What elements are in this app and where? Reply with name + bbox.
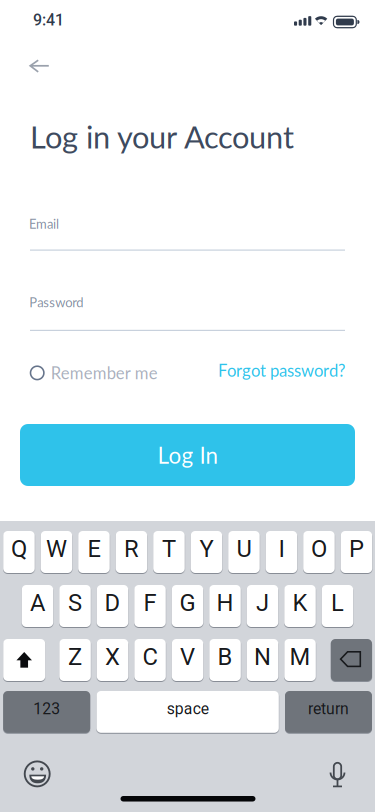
button[interactable]: Back (29, 59, 50, 73)
button[interactable]: Remember me (30, 363, 158, 383)
staticText: return (308, 700, 349, 718)
staticText: M (290, 643, 311, 671)
button[interactable]: X (97, 639, 128, 681)
staticText: Remember me (51, 363, 158, 383)
staticText: Z (68, 643, 82, 671)
staticText: C (143, 643, 158, 671)
staticText: H (216, 589, 233, 617)
button[interactable]: return (285, 691, 372, 733)
staticText: R (124, 535, 139, 563)
staticText: J (256, 589, 269, 617)
staticText: B (218, 643, 233, 671)
button[interactable]: Y (191, 531, 222, 573)
button[interactable]: M (284, 639, 316, 681)
staticText: F (143, 589, 156, 617)
button[interactable]: Z (59, 639, 91, 681)
button[interactable]: W (41, 531, 72, 573)
button[interactable]: Q (3, 531, 35, 573)
staticText: K (292, 589, 307, 617)
button[interactable]: D (97, 585, 128, 627)
button[interactable]: U (228, 531, 260, 573)
staticText: X (105, 643, 120, 671)
button[interactable]: space (96, 691, 279, 733)
button[interactable]: 123 (3, 691, 90, 733)
button[interactable]: V (172, 639, 203, 681)
staticText: 123 (33, 700, 60, 718)
staticText: Log In (157, 442, 217, 468)
staticText: V (180, 643, 195, 671)
button[interactable]: Forgot password? (218, 360, 345, 380)
button[interactable]: Delete (331, 639, 372, 681)
button[interactable]: F (134, 585, 166, 627)
staticText: S (68, 589, 82, 617)
staticText: 9:41 (33, 11, 64, 29)
button[interactable]: N (247, 639, 278, 681)
staticText: W (46, 535, 67, 563)
staticText: A (30, 589, 45, 617)
button[interactable]: P (341, 531, 372, 573)
staticText: Y (199, 535, 213, 563)
button[interactable]: Log In (20, 424, 355, 486)
staticText: U (236, 535, 251, 563)
staticText: Password (29, 294, 83, 310)
button[interactable]: L (322, 585, 353, 627)
staticText: N (254, 643, 271, 671)
button[interactable]: O (303, 531, 335, 573)
button[interactable]: Shift (3, 639, 45, 681)
staticText: L (331, 589, 344, 617)
button[interactable]: Emoji (25, 761, 50, 786)
button[interactable]: Dictate (329, 762, 346, 788)
staticText: G (179, 589, 195, 617)
staticText: E (87, 535, 100, 563)
staticText: T (162, 535, 176, 563)
button[interactable]: B (209, 639, 241, 681)
button[interactable]: E (78, 531, 110, 573)
button[interactable]: G (172, 585, 203, 627)
staticText: Email (29, 216, 59, 232)
button[interactable]: A (22, 585, 53, 627)
button[interactable]: R (116, 531, 147, 573)
button[interactable]: I (266, 531, 297, 573)
button[interactable]: J (247, 585, 278, 627)
button[interactable]: H (209, 585, 241, 627)
staticText: O (311, 535, 327, 563)
staticText: space (167, 700, 209, 718)
staticText: I (278, 535, 284, 563)
button[interactable]: T (153, 531, 185, 573)
staticText: P (349, 535, 364, 563)
staticText: Log in your Account (30, 118, 294, 155)
button[interactable]: C (134, 639, 166, 681)
staticText: Q (11, 535, 27, 563)
staticText: Forgot password? (218, 360, 345, 380)
button[interactable]: S (59, 585, 91, 627)
staticText: D (104, 589, 120, 617)
button[interactable]: K (284, 585, 316, 627)
